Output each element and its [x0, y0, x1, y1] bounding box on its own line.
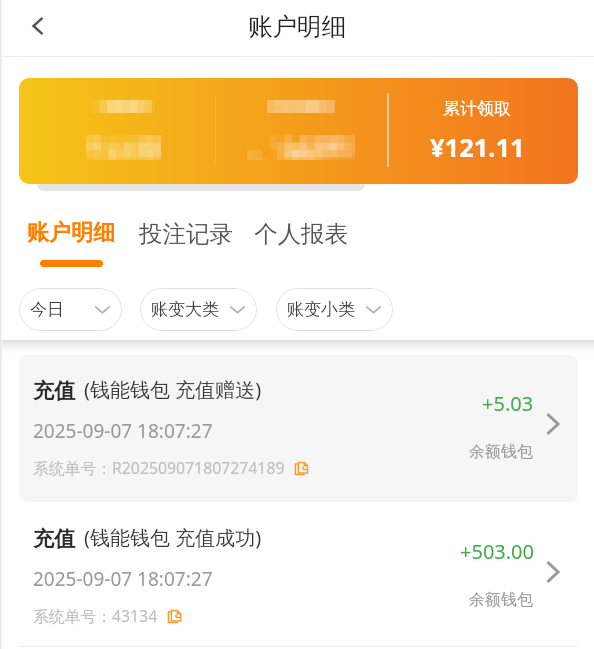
staticText: 2025-09-07 18:07:27: [33, 566, 213, 592]
staticText: +503.00: [460, 538, 534, 565]
staticText: (钱能钱包 充值赠送): [84, 376, 262, 403]
staticText: 充值: [33, 526, 75, 552]
staticText: 2025-09-07 18:07:27: [33, 418, 213, 444]
button[interactable]: Details: [538, 557, 568, 587]
staticText: 系统单号：R202509071807274189: [33, 457, 285, 479]
staticText: ¥121.11: [430, 130, 525, 165]
staticText: +5.03: [482, 390, 534, 417]
button[interactable]: Copy order number: [293, 460, 309, 476]
staticText: 账户明细: [27, 219, 115, 247]
button[interactable]: 充值: [19, 503, 578, 649]
button[interactable]: 投注记录: [139, 219, 233, 249]
staticText: 累计领取: [443, 98, 511, 119]
staticText: 充值: [33, 378, 75, 404]
button[interactable]: 充值: [19, 355, 578, 502]
staticText: 账变大类: [151, 299, 219, 320]
button[interactable]: 账变小类: [276, 288, 393, 331]
staticText: 账户明细: [248, 11, 346, 42]
staticText: (钱能钱包 充值成功): [84, 524, 262, 551]
staticText: 系统单号：43134: [33, 605, 158, 627]
staticText: 投注记录: [139, 219, 233, 249]
staticText: 余额钱包: [469, 442, 533, 462]
button[interactable]: 累计领取: [19, 78, 578, 184]
staticText: 余额钱包: [469, 590, 533, 610]
staticText: 个人报表: [254, 219, 348, 249]
button[interactable]: 今日: [19, 288, 122, 331]
staticText: 今日: [30, 299, 64, 320]
button[interactable]: Back: [18, 8, 58, 48]
button[interactable]: 账户明细: [27, 219, 115, 267]
button[interactable]: Details: [538, 409, 568, 439]
button[interactable]: 账变大类: [140, 288, 257, 331]
staticText: 账变小类: [287, 299, 355, 320]
button[interactable]: Copy order number: [166, 608, 182, 624]
button[interactable]: 个人报表: [254, 219, 348, 249]
